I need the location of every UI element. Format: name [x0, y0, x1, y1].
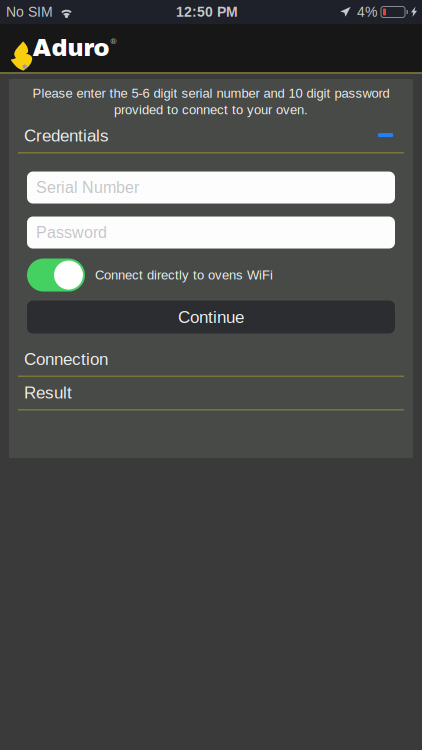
staticText: ®: [110, 37, 116, 46]
staticText: 12:50 PM: [176, 4, 238, 20]
staticText: Aduro: [32, 35, 109, 61]
staticText: No SIM: [6, 4, 53, 20]
staticText: Please enter the 5-6 digit serial number…: [32, 86, 389, 100]
staticText: Credentials: [24, 126, 109, 145]
button[interactable]: Connection: [27, 349, 395, 377]
staticText: Continue: [178, 308, 244, 327]
button[interactable]: Connect directly to ovens WiFi: [27, 258, 85, 291]
button[interactable]: Result: [27, 383, 395, 410]
button[interactable]: Credentials: [27, 126, 395, 153]
staticText: Password: [36, 224, 107, 241]
staticText: Serial Number: [36, 179, 139, 196]
staticText: Connect directly to ovens WiFi: [95, 268, 273, 282]
staticText: Result: [24, 383, 72, 402]
button[interactable]: Continue: [27, 300, 395, 333]
staticText: 4%: [357, 4, 377, 20]
button[interactable]: Serial Number: [27, 171, 395, 203]
staticText: Connection: [24, 349, 108, 368]
staticText: provided to connect to your oven.: [114, 102, 308, 117]
button[interactable]: Password: [27, 216, 395, 248]
